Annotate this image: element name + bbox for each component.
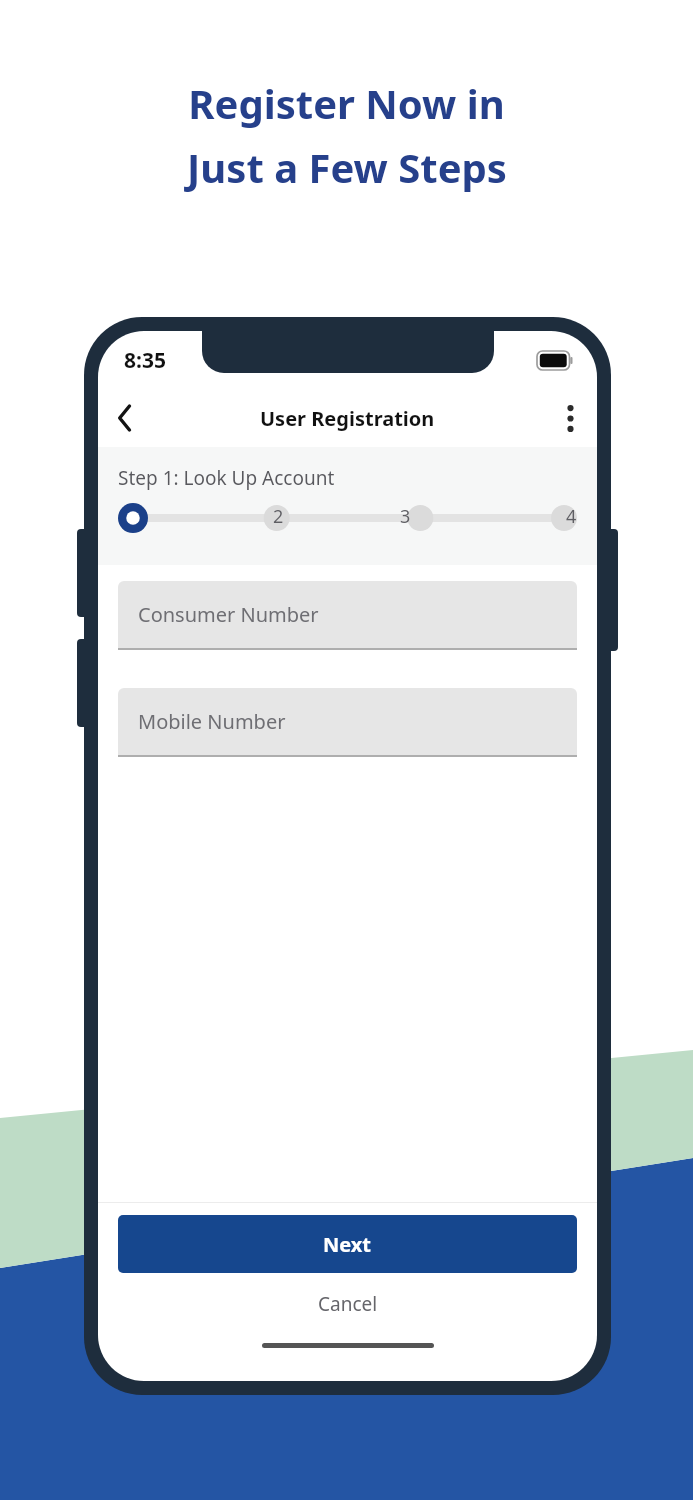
staticText: 2 [273, 504, 284, 529]
staticText: Register Now in [188, 76, 505, 130]
staticText: 4 [566, 504, 577, 529]
staticText: Just a Few Steps [187, 140, 507, 194]
staticText: Step 1: Look Up Account [118, 465, 335, 491]
button[interactable]: Mobile Number [118, 688, 577, 755]
button[interactable]: More options [543, 391, 597, 445]
button[interactable]: Cancel [98, 1273, 597, 1335]
button[interactable]: Back [98, 391, 152, 445]
staticText: Consumer Number [138, 601, 319, 628]
button[interactable]: Consumer Number [118, 581, 577, 648]
staticText: Next [323, 1231, 372, 1258]
staticText: 8:35 [124, 346, 166, 375]
staticText: 3 [400, 504, 411, 529]
staticText: User Registration [260, 405, 435, 432]
staticText: Mobile Number [138, 708, 286, 735]
staticText: Cancel [318, 1291, 378, 1317]
button[interactable]: Next [118, 1215, 577, 1273]
